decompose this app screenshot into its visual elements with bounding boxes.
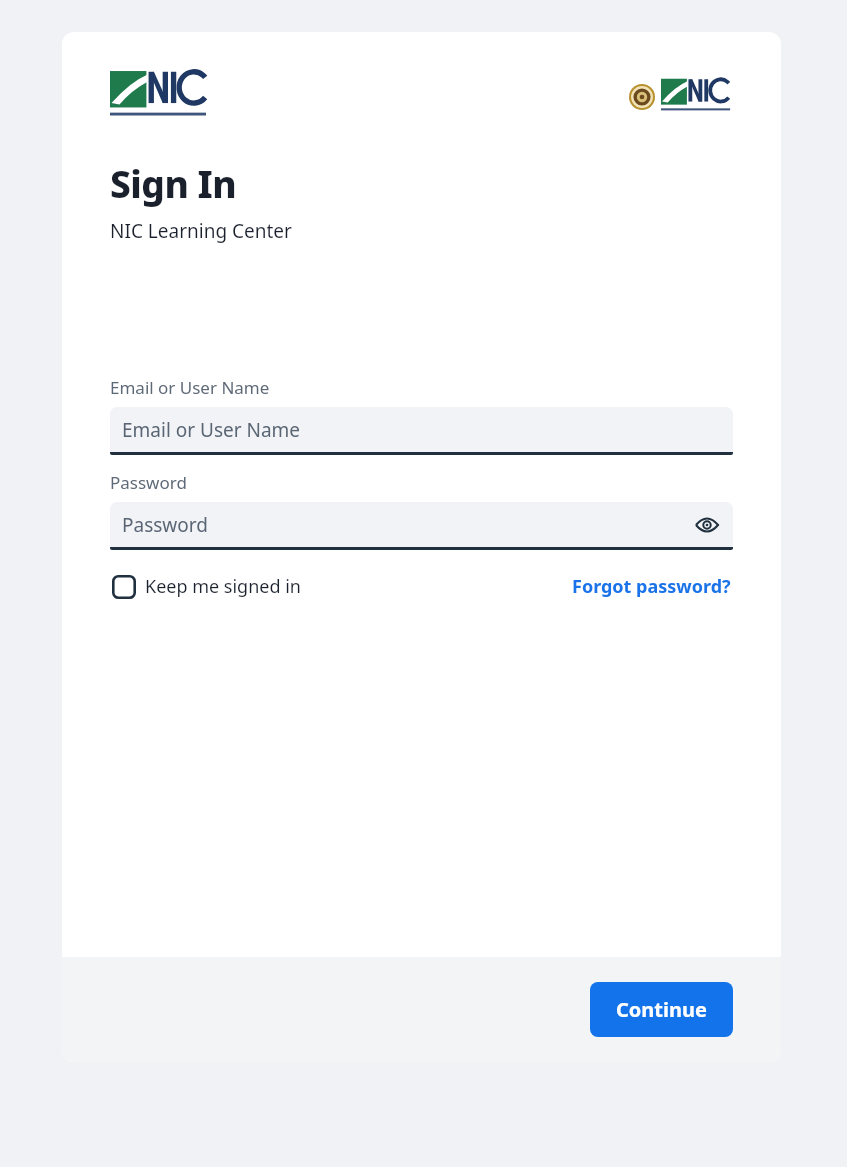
staticText: NIC Learning Center <box>110 218 292 244</box>
staticText: Email or User Name <box>110 376 270 399</box>
staticText: Password <box>110 471 187 494</box>
button[interactable]: Show password <box>691 509 723 541</box>
button[interactable]: Email or User Name <box>110 407 733 452</box>
staticText: Keep me signed in <box>145 574 301 599</box>
staticText: Forgot password? <box>572 574 731 599</box>
staticText: Password <box>122 512 208 538</box>
button[interactable]: Forgot password? <box>570 568 733 605</box>
staticText: Continue <box>616 996 707 1023</box>
staticText: Sign In <box>110 158 237 208</box>
button[interactable]: Continue <box>590 982 733 1037</box>
button[interactable]: Password <box>110 502 733 547</box>
button[interactable]: Keep me signed in <box>110 568 303 605</box>
staticText: Email or User Name <box>122 417 301 443</box>
